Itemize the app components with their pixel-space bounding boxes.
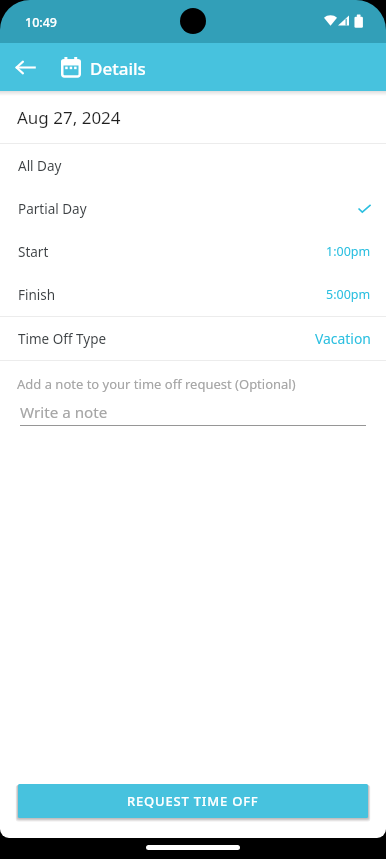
staticText: Aug 27, 2024 [17, 106, 121, 129]
staticText: Partial Day [18, 200, 87, 218]
other: Battery [354, 14, 363, 28]
staticText: Write a note [20, 402, 108, 423]
button[interactable]: Time Off Type [0, 317, 386, 360]
staticText: All Day [18, 157, 62, 175]
button[interactable]: Partial Day [0, 187, 386, 230]
staticText: 1:00pm [326, 243, 371, 260]
staticText: Vacation [315, 329, 371, 348]
button[interactable]: All Day [0, 144, 386, 187]
staticText: Details [90, 57, 146, 80]
staticText: Add a note to your time off request (Opt… [17, 375, 296, 393]
other: Mobile signal [338, 15, 349, 26]
staticText: Time Off Type [18, 330, 107, 348]
button[interactable]: Back [2, 44, 48, 90]
staticText: REQUEST TIME OFF [127, 792, 259, 810]
button[interactable]: Finish [0, 273, 386, 316]
button[interactable]: Start [0, 230, 386, 273]
staticText: Finish [18, 286, 56, 304]
staticText: Start [18, 243, 49, 261]
other: Wi-Fi [324, 15, 337, 26]
staticText: 5:00pm [326, 286, 371, 303]
button[interactable]: REQUEST TIME OFF [18, 784, 368, 818]
staticText: 10:49 [25, 14, 58, 31]
